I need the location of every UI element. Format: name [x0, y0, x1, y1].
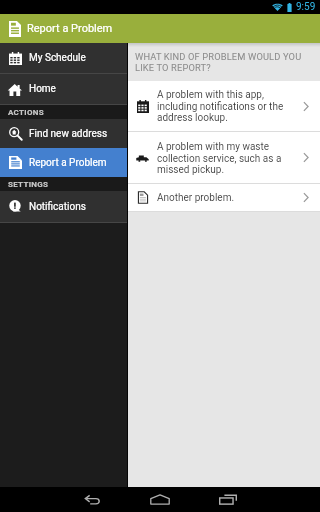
button[interactable]: A problem with my waste collection servi… — [128, 132, 320, 183]
staticText: Find new address — [29, 128, 108, 140]
button[interactable]: Another problem. — [128, 184, 320, 211]
staticText: 9:59 — [296, 1, 316, 13]
staticText: A problem with this app, including notif… — [157, 89, 289, 123]
staticText: Report a Problem — [29, 157, 107, 169]
staticText: SETTINGS — [8, 180, 49, 189]
button[interactable]: A problem with this app, including notif… — [128, 81, 320, 131]
button[interactable]: Home — [0, 74, 127, 104]
staticText: WHAT KIND OF PROBLEM WOULD YOU LIKE TO R… — [135, 51, 302, 73]
staticText: My Schedule — [29, 52, 86, 64]
button[interactable]: Recent apps — [194, 487, 262, 512]
button[interactable]: Home — [126, 487, 194, 512]
button[interactable]: Back — [58, 487, 126, 512]
staticText: A problem with my waste collection servi… — [157, 141, 289, 175]
staticText: Report a Problem — [27, 22, 113, 35]
staticText: ACTIONS — [8, 108, 44, 117]
button[interactable]: Find new address — [0, 119, 127, 148]
button[interactable]: My Schedule — [0, 43, 127, 73]
button[interactable]: Notifications — [0, 191, 127, 222]
button[interactable]: Report a Problem — [0, 148, 127, 177]
staticText: Notifications — [29, 201, 86, 213]
staticText: Another problem. — [157, 192, 289, 204]
staticText: Home — [29, 83, 56, 95]
